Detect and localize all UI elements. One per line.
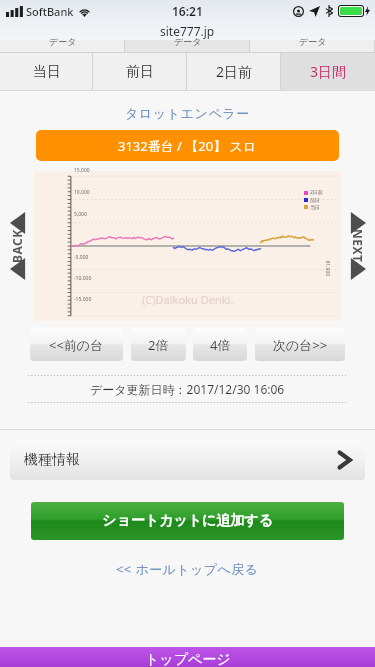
button[interactable]: ショートカットに追加する xyxy=(31,502,344,540)
staticText: ショートカットに追加する xyxy=(102,512,273,530)
button[interactable]: トップページ xyxy=(0,647,375,667)
button[interactable]: 3132番台 / 【20】 スロ xyxy=(36,130,339,161)
button[interactable]: 2倍 xyxy=(131,328,186,361)
staticText: site777.jp xyxy=(160,23,215,39)
button[interactable]: << ホールトップへ戻る xyxy=(0,560,375,578)
staticText: データ更新日時：2017/12/30 16:06 xyxy=(90,381,285,397)
staticText: -15,000 xyxy=(74,296,92,303)
staticText: 前日 xyxy=(310,197,320,203)
staticText: 機種情報 xyxy=(24,451,80,469)
staticText: 81,900 xyxy=(323,260,330,276)
staticText: 前日 xyxy=(126,63,154,81)
staticText: 当日 xyxy=(310,204,320,210)
staticText: 15,000 xyxy=(74,167,90,174)
staticText: << ホールトップへ戻る xyxy=(116,560,259,578)
staticText: 次の台>> xyxy=(273,336,328,354)
staticText: BACK xyxy=(9,229,25,263)
staticText: SoftBank xyxy=(26,4,74,19)
staticText: タロットエンペラー xyxy=(125,105,250,121)
button[interactable]: データ xyxy=(0,40,125,52)
staticText: 16:21 xyxy=(172,3,203,19)
button[interactable]: 3日間 xyxy=(281,53,375,90)
button[interactable]: 前日 xyxy=(93,53,187,90)
button[interactable]: タロットエンペラー xyxy=(0,105,375,121)
staticText: 2倍 xyxy=(148,336,169,354)
button[interactable]: 機種情報 xyxy=(10,440,365,480)
staticText: データ xyxy=(299,36,327,47)
staticText: 当日 xyxy=(33,63,61,81)
staticText: データ xyxy=(174,36,202,47)
staticText: -10,000 xyxy=(74,275,92,282)
button[interactable]: データ xyxy=(125,40,250,52)
staticText: 2日前 xyxy=(216,62,253,81)
button[interactable]: 次の台>> xyxy=(255,328,345,361)
staticText: 5,000 xyxy=(74,211,87,218)
button[interactable]: <<前の台 xyxy=(30,328,123,361)
staticText: トップページ xyxy=(145,651,231,667)
staticText: 4倍 xyxy=(210,336,231,354)
staticText: -5,000 xyxy=(74,254,89,261)
staticText: NEXT xyxy=(350,229,366,263)
button[interactable]: データ xyxy=(250,40,375,52)
staticText: <<前の台 xyxy=(49,336,104,354)
staticText: 2日前 xyxy=(310,189,323,196)
staticText: 10,000 xyxy=(74,189,90,196)
button[interactable]: 当日 xyxy=(0,53,93,90)
staticText: データ xyxy=(49,36,77,47)
staticText: 3日間 xyxy=(310,62,347,81)
button[interactable]: 2日前 xyxy=(187,53,281,90)
button[interactable]: BACK xyxy=(0,171,34,321)
staticText: (C)Daikoku Denki. xyxy=(142,292,234,307)
staticText: 3132番台 / 【20】 スロ xyxy=(118,137,257,155)
button[interactable]: 4倍 xyxy=(193,328,247,361)
button[interactable]: NEXT xyxy=(341,171,375,321)
